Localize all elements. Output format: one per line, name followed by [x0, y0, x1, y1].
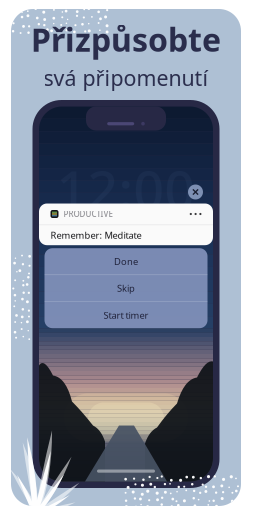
button[interactable]: Skip [44, 275, 207, 301]
button[interactable]: Done [44, 248, 207, 274]
staticText: PRODUCTIVE [63, 209, 112, 219]
staticText: Remember: Meditate [50, 229, 141, 241]
staticText: Start timer [103, 309, 148, 321]
button[interactable]: Start timer [44, 302, 207, 328]
staticText: svá připomenutí [43, 63, 208, 92]
button[interactable]: Dismiss notification [188, 184, 203, 199]
staticText: Skip [117, 282, 135, 294]
staticText: Done [114, 255, 138, 267]
button[interactable]: PRODUCTIVE [39, 203, 213, 245]
staticText: 12:00 [56, 153, 195, 224]
staticText: Přizpůsobte [31, 18, 221, 60]
